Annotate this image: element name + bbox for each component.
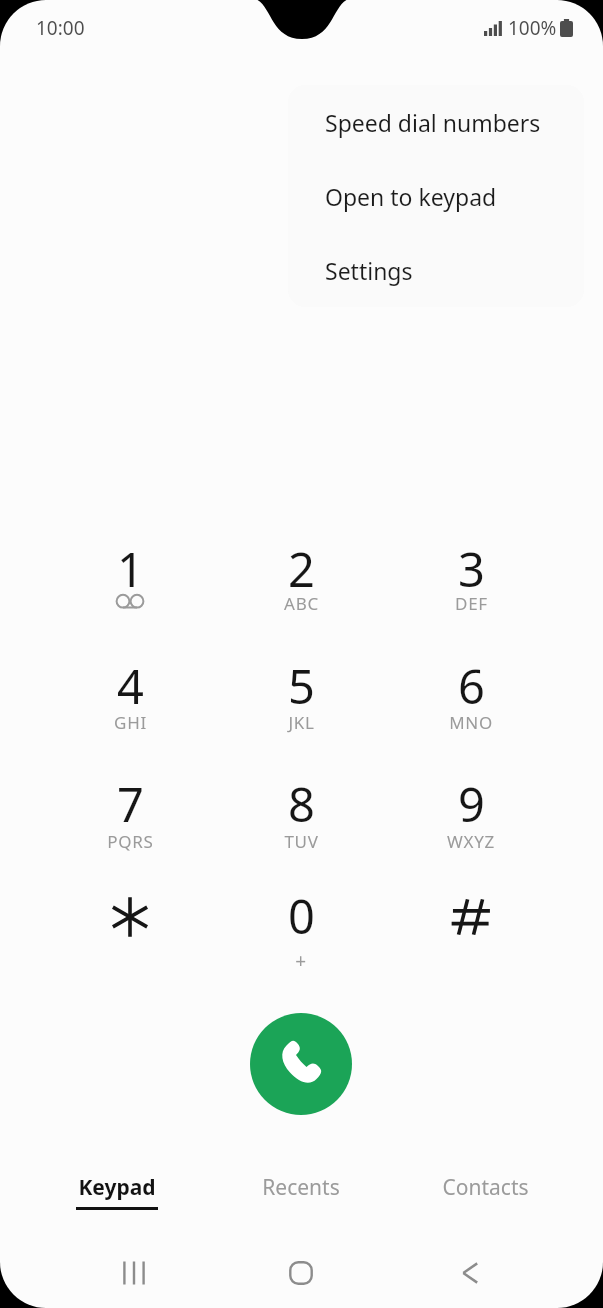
staticText: JKL	[288, 711, 315, 734]
button[interactable]: Dial 8	[243, 759, 359, 867]
staticText: Keypad	[78, 1173, 156, 1202]
staticText: 1	[117, 537, 144, 601]
button[interactable]: Dial 0	[243, 871, 359, 979]
button[interactable]: Call	[250, 1013, 352, 1115]
staticText: +	[295, 948, 307, 974]
button[interactable]: Dial 9	[413, 759, 529, 867]
button[interactable]: Back	[430, 1242, 510, 1304]
button[interactable]: Dial 7	[72, 759, 188, 867]
staticText: TUV	[284, 830, 319, 853]
staticText: 100%	[508, 15, 557, 41]
button[interactable]: Dial 2	[243, 524, 359, 632]
button[interactable]: Dial 1	[72, 524, 188, 632]
button[interactable]: Dial 4	[72, 641, 188, 749]
staticText: 4	[117, 654, 144, 718]
staticText: 7	[117, 772, 144, 836]
staticText: 8	[288, 772, 315, 836]
button[interactable]: Open to keypad	[288, 159, 584, 233]
staticText: Recents	[262, 1173, 340, 1202]
button[interactable]: Recent apps	[94, 1242, 174, 1304]
staticText: GHI	[114, 711, 147, 734]
staticText: Contacts	[442, 1173, 529, 1202]
button[interactable]: Settings	[288, 233, 584, 307]
staticText: 10:00	[36, 15, 85, 41]
staticText: 5	[288, 654, 315, 718]
button[interactable]: Contacts	[393, 1156, 577, 1218]
button[interactable]: Dial 3	[413, 524, 529, 632]
staticText: Open to keypad	[325, 181, 497, 212]
staticText: ABC	[284, 592, 319, 615]
button[interactable]: Dial #	[413, 871, 529, 979]
staticText: 6	[458, 654, 485, 718]
staticText: PQRS	[107, 830, 154, 853]
staticText: Settings	[325, 255, 413, 286]
button[interactable]: Recents	[209, 1156, 393, 1218]
button[interactable]: Home	[261, 1242, 341, 1304]
button[interactable]: Dial *	[72, 871, 188, 979]
staticText: 9	[458, 772, 485, 836]
button[interactable]: Dial 6	[413, 641, 529, 749]
staticText: WXYZ	[447, 830, 495, 853]
button[interactable]: Keypad	[25, 1156, 209, 1218]
staticText: 2	[288, 537, 315, 601]
staticText: 3	[458, 537, 485, 601]
staticText: MNO	[449, 711, 493, 734]
button[interactable]: Speed dial numbers	[288, 85, 584, 159]
staticText: 0	[288, 884, 315, 948]
staticText: DEF	[455, 592, 488, 615]
button[interactable]: Dial 5	[243, 641, 359, 749]
staticText: Speed dial numbers	[325, 107, 541, 138]
